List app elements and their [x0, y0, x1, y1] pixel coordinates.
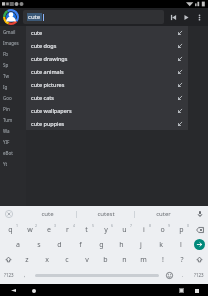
- button[interactable]: Tw: [0, 70, 26, 81]
- button[interactable]: !: [153, 252, 172, 267]
- button[interactable]: a: [7, 237, 28, 252]
- button[interactable]: x: [37, 252, 57, 267]
- button[interactable]: f: [70, 237, 91, 252]
- button[interactable]: Next: [180, 11, 193, 24]
- button[interactable]: Shift: [191, 252, 208, 267]
- button[interactable]: Search: [191, 237, 208, 252]
- button[interactable]: z: [17, 252, 37, 267]
- button[interactable]: l: [171, 237, 191, 252]
- staticText: b: [103, 255, 108, 265]
- button[interactable]: b: [96, 252, 115, 267]
- button[interactable]: v: [77, 252, 96, 267]
- button[interactable]: cute: [23, 10, 164, 24]
- staticText: cuter: [156, 210, 171, 218]
- staticText: j: [140, 240, 142, 250]
- button[interactable]: Backspace: [191, 222, 208, 237]
- button[interactable]: Ig: [0, 81, 26, 92]
- button[interactable]: n: [115, 252, 134, 267]
- staticText: ,: [24, 272, 26, 278]
- staticText: 3: [54, 223, 57, 228]
- button[interactable]: Wa: [0, 125, 26, 136]
- button[interactable]: Shift: [0, 252, 17, 267]
- staticText: u: [122, 225, 127, 235]
- button[interactable]: Back: [8, 285, 19, 296]
- staticText: m: [140, 255, 147, 265]
- button[interactable]: y: [96, 222, 115, 237]
- button[interactable]: cute: [18, 206, 76, 222]
- button[interactable]: cute dogs: [26, 39, 188, 52]
- button[interactable]: g: [91, 237, 111, 252]
- button[interactable]: d: [49, 237, 70, 252]
- staticText: n: [122, 255, 127, 265]
- button[interactable]: i: [134, 222, 153, 237]
- button[interactable]: cute pictures: [26, 78, 188, 91]
- staticText: cute dogs: [31, 42, 57, 49]
- button[interactable]: m: [134, 252, 153, 267]
- staticText: cute pictures: [31, 81, 65, 88]
- button[interactable]: Fb: [0, 48, 26, 59]
- staticText: ?123: [194, 272, 204, 278]
- button[interactable]: Previous: [167, 11, 180, 24]
- button[interactable]: p: [172, 222, 191, 237]
- button[interactable]: c: [57, 252, 77, 267]
- button[interactable]: Goo: [0, 92, 26, 103]
- button[interactable]: YIF: [0, 136, 26, 147]
- button[interactable]: Account: [3, 9, 19, 25]
- button[interactable]: t: [77, 222, 96, 237]
- staticText: 8: [149, 223, 152, 228]
- button[interactable]: k: [151, 237, 171, 252]
- staticText: !: [162, 255, 164, 265]
- button[interactable]: cutest: [77, 206, 134, 222]
- staticText: a: [16, 240, 20, 250]
- staticText: p: [179, 225, 184, 235]
- staticText: w: [27, 225, 33, 235]
- staticText: ?: [180, 255, 184, 265]
- button[interactable]: Recent apps: [176, 285, 187, 296]
- button[interactable]: More options: [193, 11, 206, 24]
- button[interactable]: ?: [172, 252, 191, 267]
- button[interactable]: j: [131, 237, 151, 252]
- button[interactable]: cute animals: [26, 65, 188, 78]
- staticText: d: [57, 240, 62, 250]
- button[interactable]: Tum: [0, 114, 26, 125]
- button[interactable]: o: [153, 222, 172, 237]
- button[interactable]: Overview: [191, 285, 202, 296]
- button[interactable]: ,: [18, 267, 32, 283]
- button[interactable]: cuter: [135, 206, 192, 222]
- button[interactable]: cute wallpapers: [26, 104, 188, 117]
- button[interactable]: Home: [28, 285, 39, 296]
- staticText: z: [25, 255, 29, 265]
- button[interactable]: Dismiss suggestions: [0, 206, 18, 222]
- button[interactable]: ?123: [0, 267, 18, 283]
- button[interactable]: cute cats: [26, 91, 188, 104]
- staticText: l: [180, 240, 182, 250]
- button[interactable]: cute puppies: [26, 117, 188, 130]
- button[interactable]: Images: [0, 37, 26, 48]
- staticText: Gmail: [3, 29, 16, 35]
- button[interactable]: Voice input: [192, 206, 208, 222]
- button[interactable]: cute drawings: [26, 52, 188, 65]
- button[interactable]: w: [20, 222, 39, 237]
- button[interactable]: Pin: [0, 103, 26, 114]
- staticText: q: [8, 225, 13, 235]
- button[interactable]: cute: [26, 26, 188, 39]
- staticText: cutest: [97, 210, 115, 218]
- staticText: Tw: [3, 73, 9, 79]
- staticText: Wa: [3, 128, 10, 134]
- button[interactable]: Gmail: [0, 26, 26, 37]
- button[interactable]: Yt: [0, 158, 26, 169]
- button[interactable]: r: [58, 222, 77, 237]
- button[interactable]: Emoji: [162, 267, 176, 283]
- button[interactable]: Sp: [0, 59, 26, 70]
- button[interactable]: ?123: [190, 267, 208, 283]
- button[interactable]: q: [0, 222, 20, 237]
- button[interactable]: e: [39, 222, 58, 237]
- staticText: t: [85, 225, 88, 235]
- button[interactable]: u: [115, 222, 134, 237]
- button[interactable]: s: [28, 237, 49, 252]
- staticText: Fb: [3, 51, 9, 57]
- button[interactable]: eBot: [0, 147, 26, 158]
- button[interactable]: h: [111, 237, 131, 252]
